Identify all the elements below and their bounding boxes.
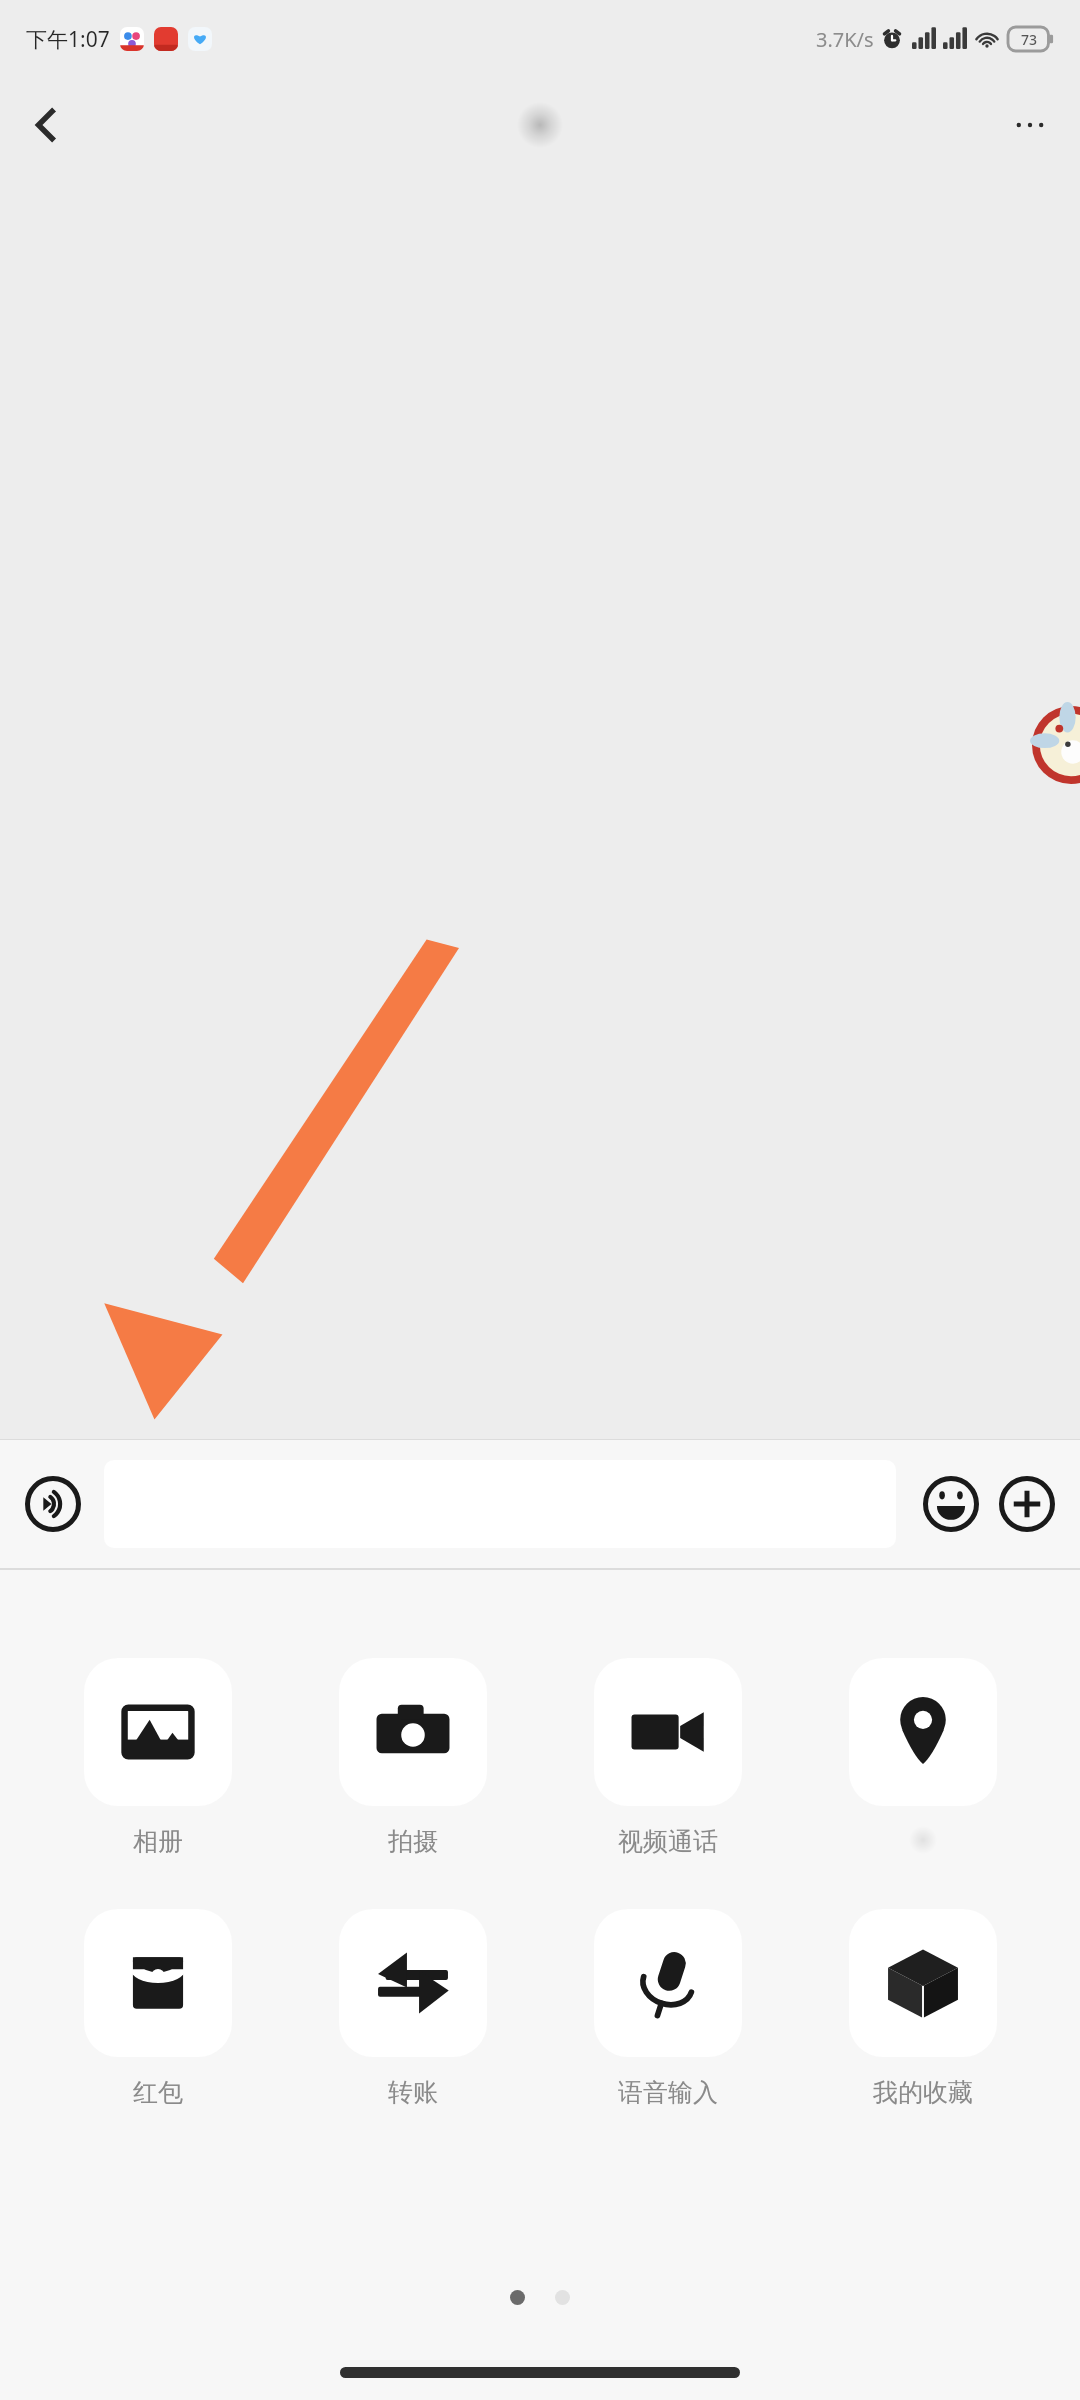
button[interactable]: Back [10,89,82,161]
button[interactable] [795,1658,1050,1854]
staticText: 红包 [133,2077,183,2108]
staticText: 转账 [388,2077,438,2108]
staticText: 拍摄 [388,1826,438,1857]
staticText: 下午1:07 [26,25,110,54]
button[interactable]: 语音输入 [540,1909,795,2108]
staticText: 3.7K/s [816,26,874,53]
button[interactable]: 拍摄 [285,1658,540,1857]
button[interactable]: Emoji [918,1471,984,1537]
button[interactable]: More options [994,89,1066,161]
staticText: 73 [1021,30,1038,49]
button[interactable]: 红包 [30,1909,285,2108]
staticText: 视频通话 [618,1826,718,1857]
staticText: 我的收藏 [873,2077,973,2108]
button[interactable]: 视频通话 [540,1658,795,1857]
button[interactable]: More functions [994,1471,1060,1537]
button[interactable]: 相册 [30,1658,285,1857]
button[interactable]: 我的收藏 [795,1909,1050,2108]
button[interactable]: 转账 [285,1909,540,2108]
button[interactable]: Voice message [20,1471,86,1537]
staticText: 相册 [133,1826,183,1857]
staticText: 语音输入 [618,2077,718,2108]
